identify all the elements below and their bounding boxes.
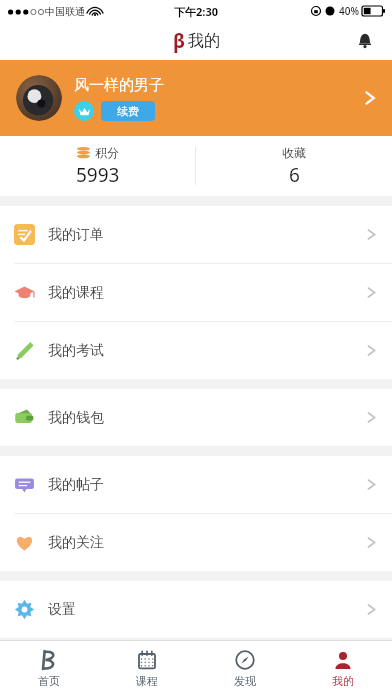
- staticText: 首页: [38, 674, 60, 688]
- staticText: 我的: [332, 674, 354, 688]
- staticText: 我的订单: [48, 226, 104, 244]
- staticText: 我的考试: [48, 342, 104, 360]
- button[interactable]: 我的考试: [0, 322, 392, 379]
- button[interactable]: 首页: [0, 641, 98, 696]
- button[interactable]: 我的帖子: [0, 456, 392, 513]
- staticText: 中国联通: [45, 5, 85, 18]
- staticText: 6: [289, 162, 300, 188]
- button[interactable]: 风一样的男子: [0, 60, 392, 136]
- button[interactable]: 我的钱包: [0, 389, 392, 446]
- staticText: 我的: [188, 31, 220, 51]
- staticText: 我的关注: [48, 534, 104, 552]
- staticText: 5993: [76, 162, 120, 188]
- staticText: 我的课程: [48, 284, 104, 302]
- button[interactable]: 续费: [101, 101, 155, 121]
- button[interactable]: 我的订单: [0, 206, 392, 263]
- button[interactable]: 我的关注: [0, 514, 392, 571]
- staticText: 发现: [234, 674, 256, 688]
- staticText: 课程: [136, 674, 158, 688]
- button[interactable]: 我的: [294, 641, 392, 696]
- button[interactable]: 设置: [0, 581, 392, 638]
- staticText: 40%: [339, 4, 359, 18]
- staticText: 积分: [95, 145, 119, 160]
- staticText: 我的帖子: [48, 476, 104, 494]
- button[interactable]: 收藏: [196, 136, 392, 196]
- button[interactable]: 发现: [196, 641, 294, 696]
- staticText: 下午2:30: [174, 4, 218, 19]
- staticText: 续费: [117, 104, 139, 118]
- button[interactable]: 积分: [0, 136, 195, 196]
- staticText: 我的钱包: [48, 409, 104, 427]
- staticText: β: [173, 28, 185, 54]
- button[interactable]: 我的课程: [0, 264, 392, 321]
- staticText: 设置: [48, 601, 76, 619]
- button[interactable]: 课程: [98, 641, 196, 696]
- staticText: 收藏: [282, 145, 306, 160]
- button[interactable]: Notifications: [348, 24, 382, 58]
- staticText: 风一样的男子: [74, 76, 164, 95]
